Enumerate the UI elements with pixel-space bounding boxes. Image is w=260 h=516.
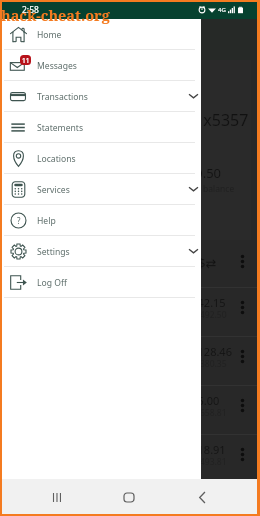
- button[interactable]: Services: [2, 174, 201, 204]
- staticText: Locations: [37, 153, 76, 165]
- staticText: 2:58: [22, 4, 39, 16]
- staticText: Help: [37, 215, 56, 227]
- button[interactable]: ?: [2, 205, 201, 235]
- button[interactable]: 11: [2, 50, 201, 80]
- staticText: -128.46: [194, 344, 232, 359]
- staticText: $⇄: [198, 254, 217, 272]
- staticText: Settings: [37, 246, 70, 258]
- staticText: Checking x5357: [130, 109, 249, 131]
- staticText: Statements: [37, 122, 84, 134]
- button[interactable]: Home: [118, 486, 140, 508]
- button[interactable]: Statements: [2, 112, 201, 142]
- staticText: Log Off: [37, 277, 67, 289]
- staticText: Messages: [37, 60, 77, 72]
- staticText: $2,492.50: [188, 309, 227, 321]
- button[interactable]: Back: [191, 486, 213, 508]
- staticText: 4G: [218, 6, 226, 14]
- staticText: -42.15: [194, 295, 226, 310]
- button[interactable]: Locations: [2, 143, 201, 173]
- staticText: $2,493.81: [188, 456, 227, 468]
- button[interactable]: Recent apps: [46, 486, 68, 508]
- staticText: Home: [37, 29, 62, 41]
- staticText: $2,380.35: [188, 358, 227, 370]
- staticText: $2,450.50: [162, 164, 222, 182]
- staticText: hack-cheat.org: [1, 5, 110, 25]
- button[interactable]: Log Off: [2, 267, 201, 297]
- staticText: 11: [22, 56, 30, 65]
- button[interactable]: Transactions: [2, 81, 201, 111]
- staticText: Services: [37, 184, 70, 196]
- staticText: $2,658.81: [188, 407, 227, 419]
- button[interactable]: Settings: [2, 236, 201, 266]
- staticText: Transactions: [37, 91, 88, 103]
- staticText: -5.00: [194, 393, 220, 408]
- button[interactable]: Home: [2, 19, 201, 49]
- staticText: -18.91: [194, 442, 226, 457]
- staticText: ?: [17, 215, 21, 226]
- staticText: Available balance: [165, 183, 235, 195]
